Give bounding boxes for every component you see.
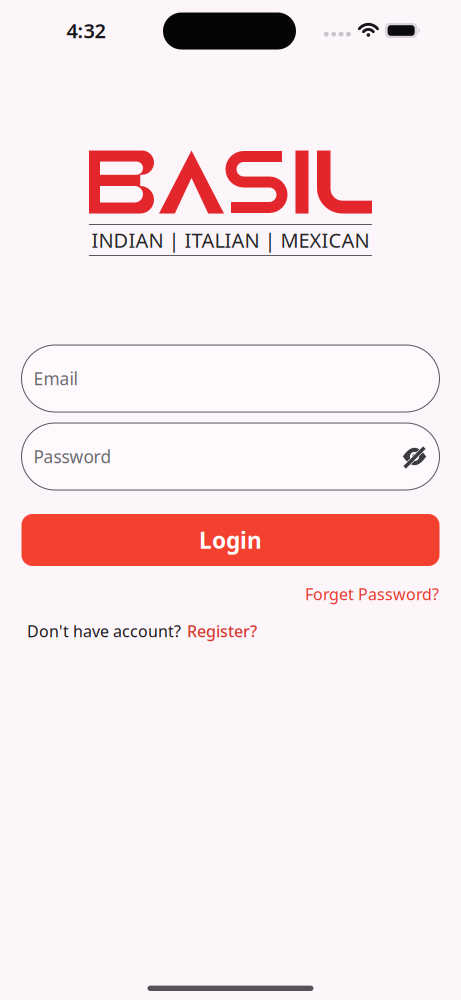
staticText: 4:32 bbox=[66, 17, 105, 44]
staticText: Password bbox=[33, 445, 111, 468]
staticText: Don't have account? bbox=[27, 620, 181, 642]
staticText: Register? bbox=[187, 620, 257, 642]
staticText: Login bbox=[199, 525, 262, 555]
button[interactable]: Password bbox=[21, 423, 439, 490]
staticText: INDIAN | ITALIAN | MEXICAN bbox=[91, 227, 369, 253]
button[interactable]: Email bbox=[21, 345, 439, 412]
button[interactable]: Forget Password? bbox=[305, 580, 439, 608]
staticText: Email bbox=[33, 367, 77, 390]
staticText: Forget Password? bbox=[305, 583, 439, 605]
button[interactable]: Register? bbox=[181, 620, 263, 642]
button[interactable]: Login bbox=[21, 514, 439, 566]
